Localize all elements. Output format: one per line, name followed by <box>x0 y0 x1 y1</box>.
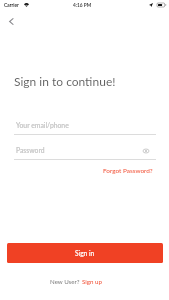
button[interactable]: Show password <box>138 143 154 159</box>
staticText: Sign up <box>82 278 102 285</box>
staticText: Your email/phone <box>16 121 69 129</box>
button[interactable]: Back <box>2 12 20 30</box>
staticText: Password <box>16 146 45 154</box>
staticText: Carrier <box>4 2 19 8</box>
staticText: Forgot Password? <box>103 167 153 175</box>
staticText: Sign in <box>75 249 95 257</box>
button[interactable]: Sign in <box>7 243 163 263</box>
staticText: Sign in to continue! <box>14 74 116 88</box>
staticText: 4:16 PM <box>73 2 92 8</box>
button[interactable]: Sign up <box>82 278 102 285</box>
button[interactable]: Forgot Password? <box>101 166 155 176</box>
staticText: New User? <box>50 278 82 285</box>
